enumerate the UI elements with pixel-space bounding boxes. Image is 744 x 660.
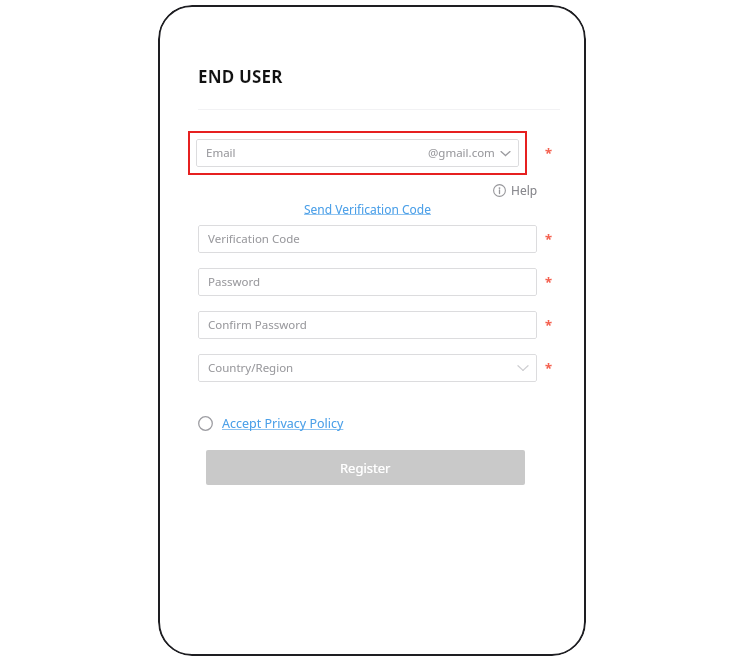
staticText: Register (340, 459, 391, 477)
button[interactable]: Accept Privacy Policy (198, 415, 344, 432)
staticText: Country/Region (208, 360, 294, 376)
staticText: @gmail.com (428, 145, 495, 161)
staticText: * (545, 359, 553, 377)
button[interactable]: Register (206, 450, 525, 485)
staticText: * (545, 273, 553, 291)
button[interactable]: Verification Code (198, 225, 537, 253)
button[interactable]: Send Verification Code (300, 200, 435, 218)
staticText: Email (206, 145, 236, 161)
staticText: Help (511, 182, 538, 198)
staticText: * (545, 316, 553, 334)
staticText: Verification Code (208, 231, 300, 247)
button[interactable]: Password (198, 268, 537, 296)
staticText: Accept Privacy Policy (222, 415, 344, 432)
staticText: * (545, 144, 553, 162)
staticText: Password (208, 274, 261, 290)
button[interactable]: Confirm Password (198, 311, 537, 339)
button[interactable]: Country/Region (198, 354, 537, 382)
staticText: END USER (198, 65, 283, 88)
button[interactable]: Email (196, 139, 519, 167)
button[interactable]: Help (491, 180, 540, 200)
staticText: Confirm Password (208, 317, 307, 333)
staticText: * (545, 230, 553, 248)
